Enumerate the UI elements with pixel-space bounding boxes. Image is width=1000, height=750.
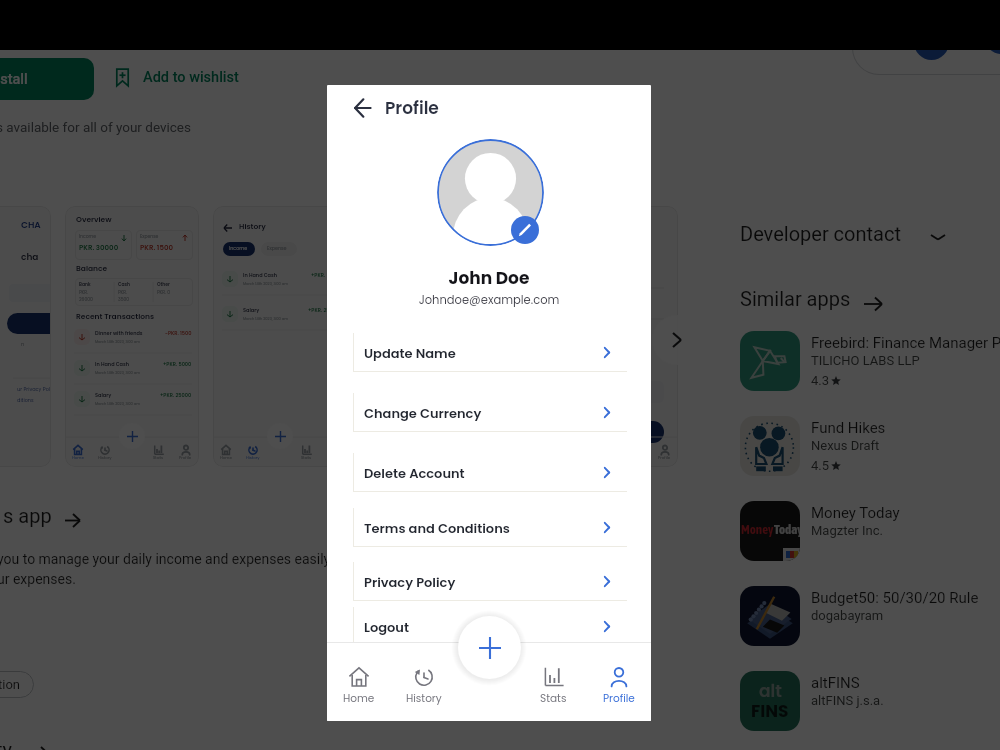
staticText: Magzter Inc. [811,523,883,538]
staticText: Expense [140,233,159,239]
staticText: Today [774,522,800,537]
staticText: Stats [540,691,567,706]
staticText: Profile [385,96,439,120]
staticText: Profile [179,455,192,461]
staticText: Home [220,455,232,461]
staticText: Dinner with friends [95,330,143,337]
staticText: TILICHO LABS LLP [811,353,920,368]
staticText: PKR. 30000 [79,243,119,253]
button[interactable]: Back [350,95,376,121]
button[interactable]: Budget50: 50/30/20 Rule [740,586,1000,664]
staticText: Home [343,691,375,706]
staticText: In Hand Cash [95,361,130,368]
staticText: March 14th 2023, 3:00 am [243,281,288,286]
button[interactable]: Back [213,206,347,467]
button[interactable]: Next screenshot [652,315,702,365]
staticText: History [98,455,112,461]
staticText: History [406,691,442,706]
button[interactable]: Logout [353,607,627,646]
staticText: 4.3 [811,373,830,388]
button[interactable]: Home [327,647,391,721]
button[interactable]: Update Name [353,333,627,372]
staticText: PKR. [79,289,88,295]
button[interactable]: Stats [521,647,586,721]
staticText: s available for all of your devices [0,119,191,135]
other: Back [223,223,233,233]
button[interactable]: Overview [65,206,199,467]
staticText: PKR. 1500 [140,243,173,253]
staticText: alt [759,679,782,703]
staticText: Profile [658,455,671,461]
button[interactable]: Freebird: Finance Manager Pro [740,331,1000,409]
staticText: ur Privacy Policy [17,386,51,393]
staticText: Johndoe@example.com [327,292,651,308]
staticText: History [246,455,260,461]
button[interactable]: CHA [0,206,51,467]
button[interactable]: Privacy Policy [353,562,627,601]
button[interactable]: Back [361,206,495,467]
button[interactable]: alt [740,671,1000,749]
staticText: Update Name [364,344,456,362]
staticText: Install [0,71,28,88]
staticText: dogabayram [811,608,884,623]
staticText: Terms and Conditions [364,519,510,537]
button[interactable]: Fund Hikes [740,416,1000,494]
staticText: Transaction [554,294,591,302]
button[interactable]: Add to wishlist [113,68,239,87]
staticText: John Doe [327,266,651,290]
button[interactable]: Add transaction [458,616,521,679]
staticText: Balance [76,263,108,273]
staticText: CHA [21,219,41,232]
staticText: 26000 [79,296,93,302]
staticText: altFINS j.s.a. [811,693,884,708]
staticText: Nexus Draft [811,438,880,453]
button[interactable]: History [391,647,456,721]
staticText: Budget50: 50/30/20 Rule [811,589,979,607]
button[interactable]: Profile [586,647,651,721]
staticText: you to manage your daily income and expe… [0,551,360,567]
staticText: Home [72,455,84,461]
button[interactable]: tion [0,671,34,698]
button[interactable]: Delete Account [353,453,627,492]
staticText: tion [0,677,21,692]
staticText: s app [3,504,52,527]
staticText: +PKR. 25000 [160,392,192,399]
staticText: Profile [603,691,635,706]
button[interactable]: Back [544,206,678,467]
other: More [31,744,50,750]
staticText: Developer contact [740,222,901,245]
staticText: March 14th 2023, 3:00 am [95,339,140,344]
button[interactable]: Install [0,58,94,100]
staticText: ur expenses. [0,571,76,587]
other: Expand [928,227,948,247]
staticText: Overview [76,214,112,224]
button[interactable]: Edit photo [511,216,539,244]
staticText: 3500 [118,296,130,302]
staticText: +PKR. 25000 [308,307,340,314]
staticText: Money [741,522,774,537]
other: About this app [63,511,82,530]
staticText: FINS [751,699,789,723]
staticText: Stats [153,455,164,461]
staticText: Bank [79,281,91,287]
button[interactable]: Change Currency [353,393,627,432]
button[interactable]: Money [740,501,1000,579]
staticText: Income [79,233,97,239]
button[interactable]: Terms and Conditions [353,508,627,547]
staticText: Other [157,281,170,287]
